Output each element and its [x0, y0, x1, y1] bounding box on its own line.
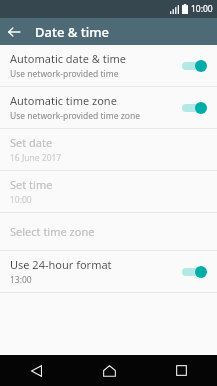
- staticText: Use network-provided time zone: [10, 110, 140, 122]
- staticText: Select time zone: [10, 224, 95, 239]
- button[interactable]: Toggle: [179, 99, 209, 117]
- button[interactable]: Automatic time zone: [0, 87, 217, 128]
- staticText: 13:00: [10, 274, 32, 286]
- button[interactable]: Back: [0, 355, 73, 386]
- staticText: 10:00: [10, 194, 32, 206]
- staticText: Automatic time zone: [10, 93, 117, 108]
- button[interactable]: Automatic date & time: [0, 45, 217, 86]
- button[interactable]: Toggle: [179, 57, 209, 75]
- staticText: Automatic date & time: [10, 51, 127, 66]
- staticText: Use network-provided time: [10, 68, 119, 80]
- button[interactable]: Set date: [0, 129, 217, 170]
- button[interactable]: Select time zone: [0, 213, 217, 250]
- button[interactable]: Back: [0, 18, 27, 45]
- staticText: 10:00: [191, 3, 213, 15]
- staticText: 16 June 2017: [10, 152, 62, 164]
- button[interactable]: Home: [73, 355, 145, 386]
- staticText: Use 24-hour format: [10, 257, 112, 272]
- button[interactable]: Set time: [0, 171, 217, 212]
- staticText: Set date: [10, 135, 53, 150]
- button[interactable]: Recents: [145, 355, 217, 386]
- staticText: Set time: [10, 177, 53, 192]
- staticText: Date & time: [35, 23, 109, 41]
- button[interactable]: Toggle: [179, 263, 209, 281]
- button[interactable]: Use 24-hour format: [0, 251, 217, 292]
